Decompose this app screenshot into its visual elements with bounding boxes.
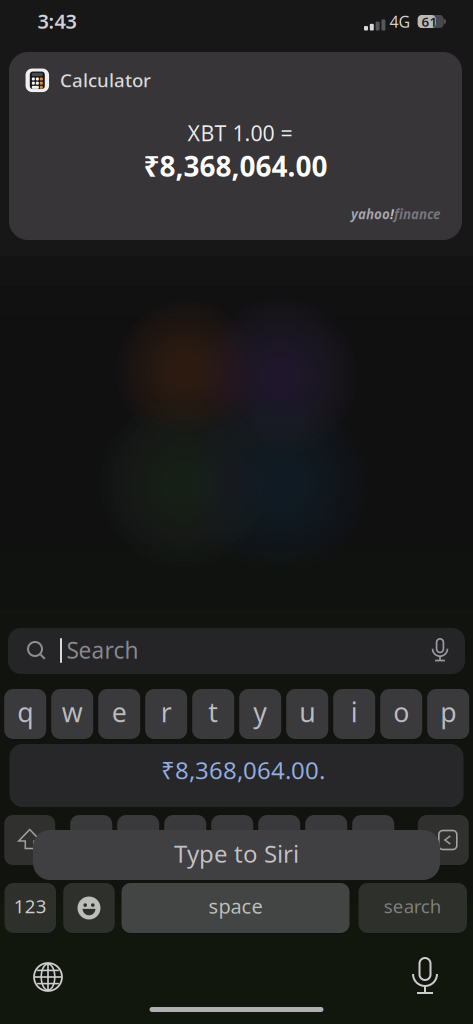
button[interactable]: z xyxy=(70,815,112,865)
staticText: y xyxy=(253,694,267,730)
button[interactable]: m xyxy=(352,815,394,865)
staticText: 123 xyxy=(14,894,47,918)
button[interactable]: space xyxy=(121,883,349,933)
button[interactable]: t xyxy=(192,689,234,739)
staticText: XBT 1.00 = xyxy=(187,119,292,147)
staticText: o xyxy=(393,694,409,730)
staticText: 4G xyxy=(389,11,410,32)
button[interactable]: c xyxy=(164,815,206,865)
button[interactable]: n xyxy=(305,815,347,865)
staticText: i xyxy=(351,694,358,730)
button[interactable]: e xyxy=(98,689,140,739)
button[interactable]: o xyxy=(380,689,422,739)
button[interactable]: v xyxy=(211,815,253,865)
button[interactable]: Dictation xyxy=(403,954,447,998)
staticText: 61 xyxy=(421,13,437,30)
button[interactable]: ₹8,368,064.00. xyxy=(9,744,463,807)
staticText: u xyxy=(299,694,315,730)
staticText: p xyxy=(440,694,456,730)
staticText: Calculator xyxy=(60,68,151,92)
button[interactable]: b xyxy=(258,815,300,865)
button[interactable]: x xyxy=(117,815,159,865)
staticText: ₹8,368,064.00 xyxy=(143,147,327,185)
button[interactable]: u xyxy=(286,689,328,739)
staticText: 3:43 xyxy=(37,8,76,34)
staticText: r xyxy=(161,694,172,730)
button[interactable]: Calculator xyxy=(9,52,462,240)
button[interactable]: search xyxy=(358,883,467,933)
button[interactable]: q xyxy=(4,689,46,739)
staticText: Search xyxy=(66,635,138,665)
staticText: t xyxy=(208,694,218,730)
staticText: Type to Siri xyxy=(174,838,299,869)
button[interactable]: r xyxy=(145,689,187,739)
staticText: w xyxy=(62,694,83,730)
staticText: finance xyxy=(394,205,440,223)
staticText: search xyxy=(384,894,442,918)
staticText: space xyxy=(208,893,262,919)
staticText: ! xyxy=(390,205,394,223)
button[interactable]: Shift xyxy=(4,815,55,865)
button[interactable]: Delete xyxy=(418,815,469,865)
button[interactable]: p xyxy=(427,689,469,739)
staticText: yahoo xyxy=(351,205,390,223)
button[interactable]: w xyxy=(51,689,93,739)
button[interactable]: i xyxy=(333,689,375,739)
button[interactable]: 123 xyxy=(4,883,56,933)
button[interactable]: y xyxy=(239,689,281,739)
staticText: ₹8,368,064.00. xyxy=(161,754,325,786)
button[interactable]: Next keyboard xyxy=(26,955,70,999)
staticText: q xyxy=(17,694,33,730)
staticText: e xyxy=(112,694,127,730)
button[interactable]: Emoji xyxy=(63,883,115,933)
button[interactable]: Search xyxy=(8,628,465,674)
button[interactable]: Type to Siri xyxy=(33,830,440,880)
